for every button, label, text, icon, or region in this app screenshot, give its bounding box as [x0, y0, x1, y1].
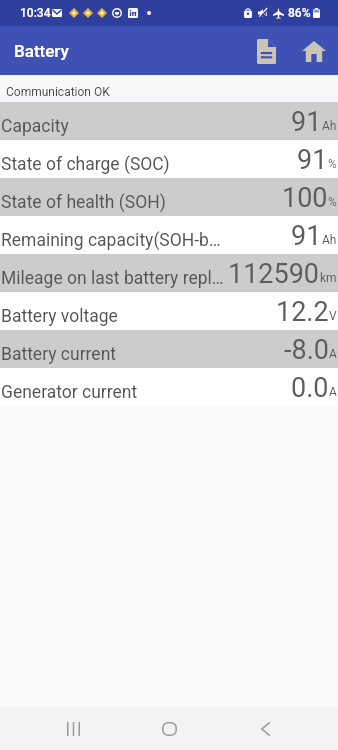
- button[interactable]: Report: [242, 27, 290, 75]
- staticText: 12.2: [276, 296, 329, 328]
- staticText: Remaining capacity(SOH-b…: [1, 230, 221, 251]
- staticText: Ah: [322, 233, 337, 247]
- staticText: Capacity: [1, 116, 69, 137]
- staticText: Battery current: [1, 344, 117, 365]
- button[interactable]: Recent apps: [25, 707, 121, 750]
- button[interactable]: Capacity: [0, 102, 338, 140]
- staticText: Mileage on last battery repl…: [1, 268, 223, 289]
- staticText: 10:34: [20, 6, 51, 20]
- button[interactable]: Battery voltage: [0, 292, 338, 330]
- staticText: 112590: [228, 258, 320, 290]
- staticText: State of charge (SOC): [1, 154, 170, 175]
- staticText: 91: [291, 106, 322, 138]
- staticText: State of health (SOH): [1, 192, 166, 213]
- staticText: Generator current: [1, 382, 138, 403]
- button[interactable]: State of health (SOH): [0, 178, 338, 216]
- staticText: Communication OK: [6, 85, 110, 99]
- staticText: V: [329, 309, 337, 323]
- staticText: km: [320, 271, 337, 285]
- button[interactable]: Back: [217, 707, 313, 750]
- staticText: 91: [297, 144, 328, 176]
- staticText: Battery voltage: [1, 306, 118, 327]
- button[interactable]: Home: [121, 707, 217, 750]
- staticText: 0.0: [291, 372, 329, 404]
- staticText: Battery: [14, 41, 69, 61]
- staticText: A: [329, 385, 337, 399]
- button[interactable]: Home: [290, 27, 338, 75]
- button[interactable]: Remaining capacity(SOH-b…: [0, 216, 338, 254]
- staticText: 100: [282, 182, 328, 214]
- staticText: A: [329, 347, 337, 361]
- button[interactable]: Mileage on last battery repl…: [0, 254, 338, 292]
- staticText: 91: [291, 220, 322, 252]
- staticText: Ah: [322, 119, 337, 133]
- button[interactable]: Battery current: [0, 330, 338, 368]
- staticText: %: [328, 195, 337, 209]
- staticText: 86%: [288, 6, 311, 20]
- staticText: -8.0: [284, 334, 329, 366]
- button[interactable]: Generator current: [0, 368, 338, 406]
- button[interactable]: State of charge (SOC): [0, 140, 338, 178]
- staticText: %: [328, 157, 337, 171]
